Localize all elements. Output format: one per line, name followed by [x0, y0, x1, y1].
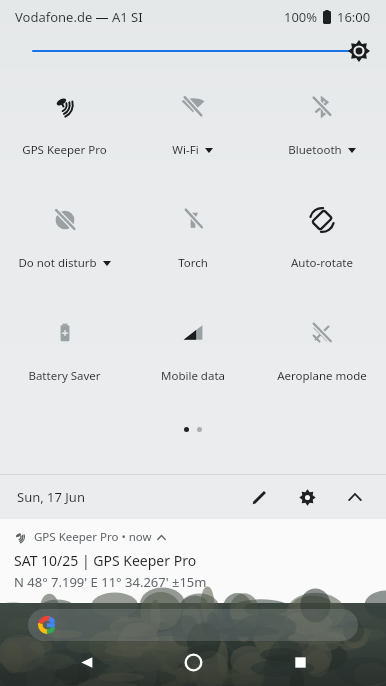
- staticText: Do not disturb: [18, 255, 97, 271]
- staticText: Vodafone.de — A1 SI: [15, 8, 143, 26]
- button[interactable]: Wi-Fi: [128, 76, 257, 189]
- staticText: Sun, 17 Jun: [17, 488, 85, 506]
- button[interactable]: Recents: [279, 641, 321, 683]
- button[interactable]: Brightness: [0, 34, 386, 68]
- button[interactable]: Auto-rotate: [257, 189, 386, 302]
- button[interactable]: Torch: [128, 189, 257, 302]
- staticText: 100%: [284, 8, 318, 26]
- button[interactable]: GPS Keeper Pro: [0, 76, 128, 189]
- button[interactable]: Back: [65, 641, 107, 683]
- staticText: Auto-rotate: [291, 255, 353, 271]
- staticText: Wi-Fi: [172, 142, 199, 158]
- button[interactable]: GPS Keeper Pro • now: [0, 519, 386, 603]
- staticText: SAT 10/25 | GPS Keeper Pro: [14, 551, 197, 570]
- staticText: Mobile data: [161, 368, 225, 384]
- button[interactable]: Edit: [242, 480, 276, 514]
- button[interactable]: Mobile data: [128, 302, 257, 415]
- button[interactable]: Do not disturb: [0, 189, 128, 302]
- button[interactable]: Aeroplane mode: [257, 302, 386, 415]
- staticText: Battery Saver: [28, 368, 101, 384]
- staticText: N 48° 7.199' E 11° 34.267' ±15m: [14, 573, 207, 591]
- staticText: GPS Keeper Pro • now: [34, 529, 152, 545]
- button[interactable]: Settings: [290, 480, 324, 514]
- button[interactable]: Collapse: [338, 480, 372, 514]
- button[interactable]: Google Search: [28, 609, 358, 641]
- staticText: GPS Keeper Pro: [22, 142, 107, 158]
- button[interactable]: Bluetooth: [257, 76, 386, 189]
- staticText: Aeroplane mode: [277, 368, 367, 384]
- staticText: Bluetooth: [288, 142, 342, 158]
- staticText: 16:00: [337, 8, 371, 26]
- button[interactable]: Home: [172, 641, 214, 683]
- staticText: Torch: [178, 255, 208, 271]
- button[interactable]: Battery Saver: [0, 302, 128, 415]
